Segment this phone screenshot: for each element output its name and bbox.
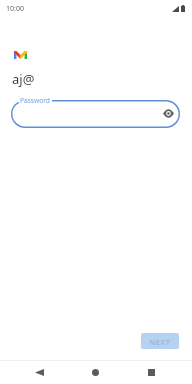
staticText: aj@ [12,70,35,88]
staticText: 10:00 [6,4,24,14]
button[interactable]: Back [23,361,56,384]
button[interactable]: Password [11,100,180,128]
button[interactable]: Show password [159,104,177,122]
button[interactable]: Home [79,361,112,384]
button[interactable]: Recent apps [135,361,168,384]
button[interactable]: NEXT [141,333,179,349]
staticText: Password [20,96,50,105]
staticText: NEXT [149,337,171,347]
